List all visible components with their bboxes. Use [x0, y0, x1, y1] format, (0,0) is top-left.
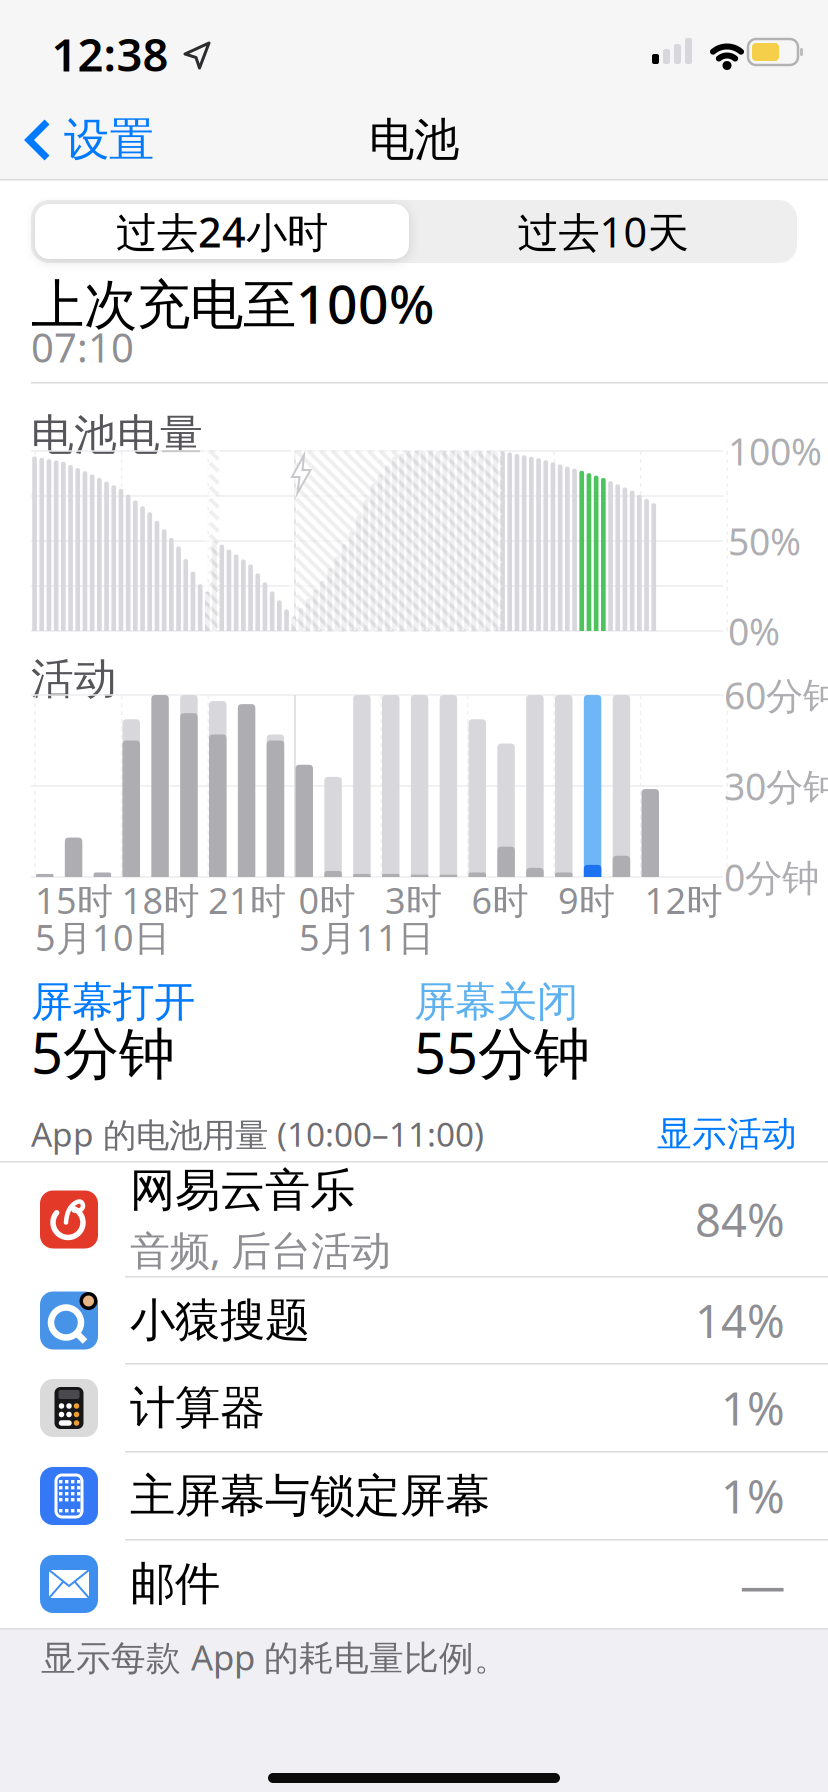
- staticText: App 的电池用量 (10:00–11:00): [31, 1112, 484, 1156]
- staticText: 屏幕打开: [31, 977, 195, 1027]
- staticText: 12:38: [51, 24, 168, 84]
- staticText: 15时: [35, 876, 113, 924]
- button[interactable]: 计算器: [40, 1364, 785, 1452]
- button[interactable]: 主屏幕与锁定屏幕: [40, 1452, 785, 1540]
- staticText: 12时: [644, 876, 722, 924]
- staticText: 55分钟: [414, 1015, 590, 1089]
- staticText: 计算器: [130, 1380, 265, 1436]
- staticText: 50%: [728, 516, 801, 566]
- staticText: 主屏幕与锁定屏幕: [130, 1468, 490, 1524]
- staticText: 过去10天: [517, 204, 688, 259]
- staticText: 60分钟: [724, 670, 828, 720]
- staticText: 0时: [298, 876, 355, 924]
- staticText: 6时: [471, 876, 528, 924]
- staticText: 过去24小时: [116, 204, 328, 259]
- staticText: —: [740, 1554, 785, 1614]
- staticText: 5分钟: [31, 1015, 175, 1089]
- staticText: 5月11日: [299, 913, 434, 961]
- staticText: 0%: [728, 606, 780, 656]
- staticText: 小猿搜题: [130, 1293, 310, 1348]
- staticText: 显示每款 App 的耗电量比例。: [41, 1634, 509, 1680]
- staticText: 18时: [121, 876, 199, 924]
- staticText: 活动: [31, 653, 117, 705]
- button[interactable]: 小猿搜题: [40, 1277, 785, 1364]
- staticText: 上次充电至100%: [31, 268, 434, 338]
- staticText: 21时: [208, 876, 286, 924]
- staticText: 3时: [385, 876, 442, 924]
- button[interactable]: 过去10天: [413, 204, 793, 259]
- button[interactable]: 过去24小时: [35, 204, 409, 259]
- button[interactable]: 设置: [26, 110, 186, 170]
- staticText: 5月10日: [35, 913, 170, 961]
- staticText: 84%: [695, 1189, 785, 1250]
- button[interactable]: 邮件: [40, 1540, 785, 1628]
- staticText: 100%: [728, 426, 822, 476]
- button[interactable]: 网易云音乐: [40, 1162, 785, 1277]
- staticText: 电池: [369, 112, 459, 168]
- staticText: 屏幕关闭: [414, 977, 578, 1027]
- staticText: 电池电量: [31, 409, 203, 461]
- staticText: 9时: [558, 876, 615, 924]
- button[interactable]: 显示活动: [637, 1116, 797, 1152]
- staticText: 14%: [695, 1290, 785, 1351]
- staticText: 显示活动: [657, 1113, 797, 1155]
- staticText: 30分钟: [724, 761, 828, 811]
- staticText: 设置: [64, 112, 154, 168]
- staticText: 0分钟: [724, 852, 819, 902]
- staticText: 邮件: [130, 1556, 220, 1612]
- staticText: 1%: [721, 1378, 785, 1438]
- staticText: 1%: [721, 1466, 785, 1526]
- staticText: 音频, 后台活动: [130, 1223, 391, 1276]
- staticText: 网易云音乐: [130, 1163, 355, 1218]
- staticText: 07:10: [31, 320, 134, 373]
